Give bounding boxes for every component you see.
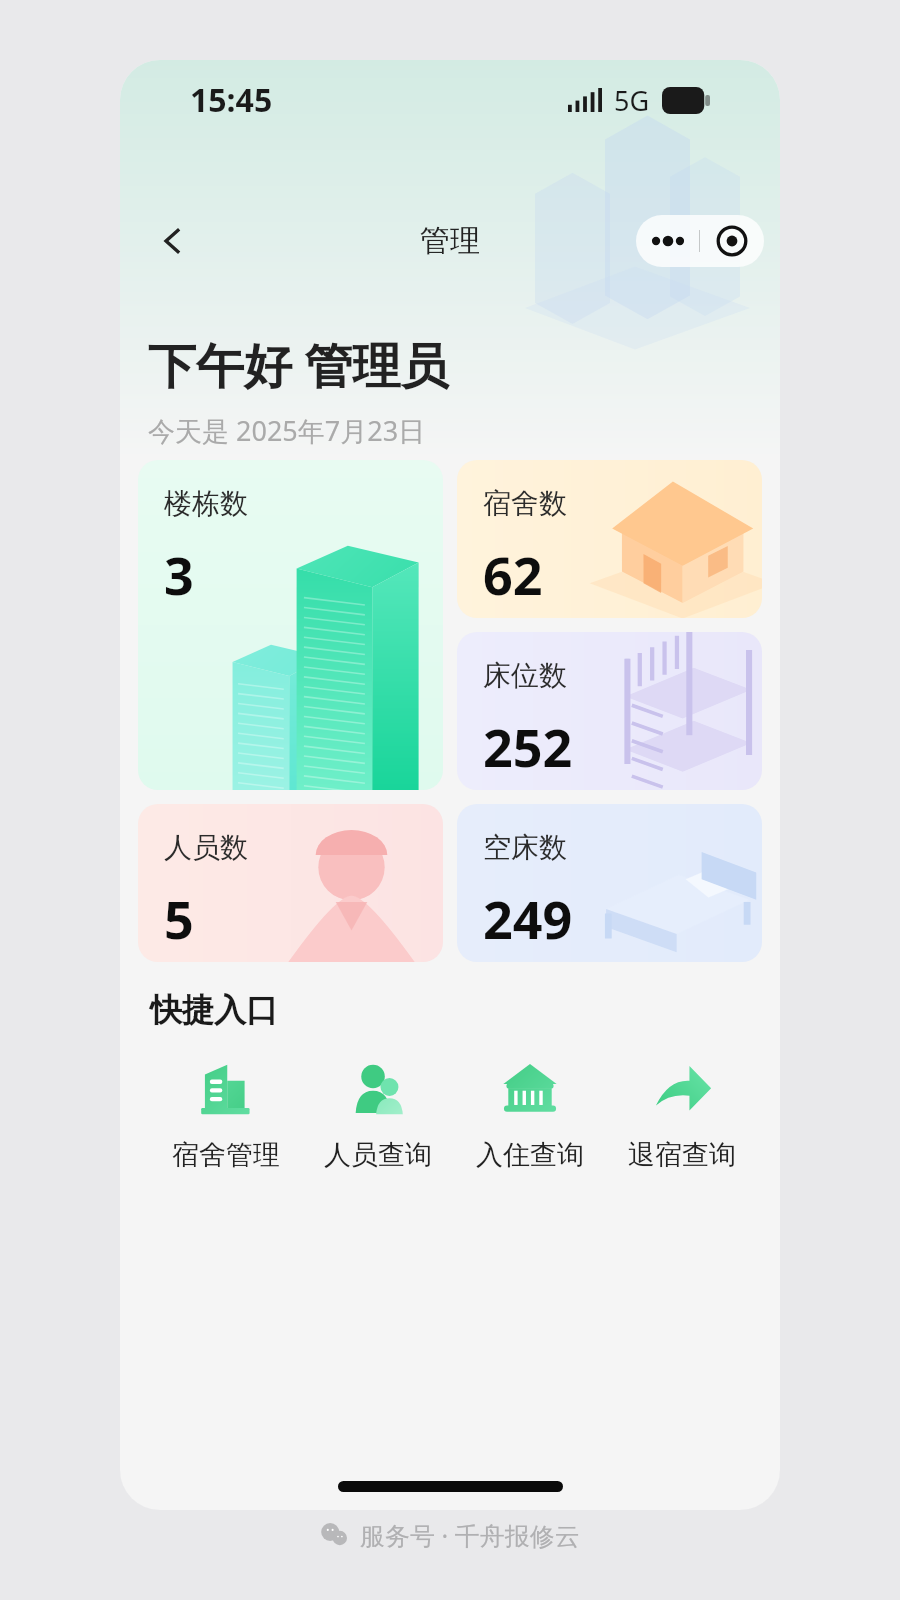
button[interactable]: 更多 bbox=[636, 215, 764, 267]
staticText: 楼栋数 bbox=[164, 486, 248, 521]
staticText: 252 bbox=[483, 711, 573, 782]
staticText: 人员查询 bbox=[324, 1138, 432, 1172]
staticText: 管理 bbox=[420, 222, 480, 260]
button[interactable]: 宿舍管理 bbox=[150, 1056, 302, 1172]
button[interactable]: 返回 bbox=[142, 210, 204, 272]
button[interactable]: 入住查询 bbox=[454, 1056, 606, 1172]
staticText: 3 bbox=[164, 539, 194, 610]
staticText: 下午好 管理员 bbox=[148, 332, 449, 398]
button[interactable]: 人员查询 bbox=[302, 1056, 454, 1172]
staticText: 入住查询 bbox=[476, 1138, 584, 1172]
staticText: 宿舍数 bbox=[483, 486, 567, 521]
staticText: 249 bbox=[483, 883, 573, 954]
staticText: 快捷入口 bbox=[150, 990, 278, 1030]
staticText: 今天是 2025年7月23日 bbox=[148, 412, 426, 449]
staticText: 5 bbox=[164, 883, 194, 954]
button[interactable]: 人员数 bbox=[138, 804, 443, 962]
button[interactable]: 宿舍数 bbox=[457, 460, 762, 618]
staticText: 15:45 bbox=[190, 78, 273, 122]
staticText: 62 bbox=[483, 539, 543, 610]
button[interactable]: 床位数 bbox=[457, 632, 762, 790]
button[interactable]: 退宿查询 bbox=[606, 1056, 758, 1172]
staticText: 宿舍管理 bbox=[172, 1138, 280, 1172]
staticText: 服务号 · 千舟报修云 bbox=[360, 1518, 580, 1552]
staticText: 人员数 bbox=[164, 830, 248, 865]
button[interactable]: 楼栋数 bbox=[138, 460, 443, 790]
staticText: 空床数 bbox=[483, 830, 567, 865]
staticText: 5G bbox=[614, 82, 650, 119]
staticText: 床位数 bbox=[483, 658, 567, 693]
button[interactable]: 空床数 bbox=[457, 804, 762, 962]
staticText: 退宿查询 bbox=[628, 1138, 736, 1172]
